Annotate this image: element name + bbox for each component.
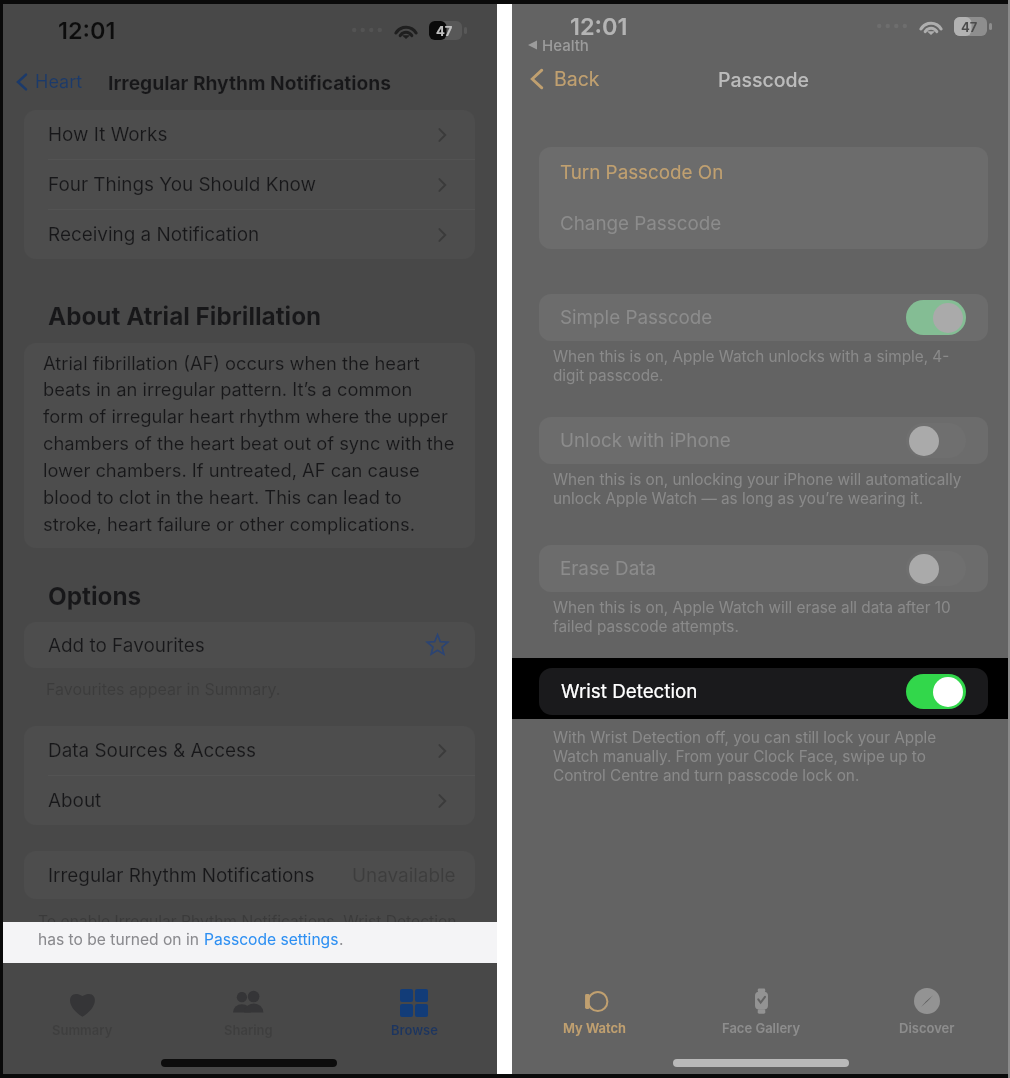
staticText: 12:01 <box>570 12 628 40</box>
button[interactable]: Health <box>524 32 593 58</box>
staticText: When this is on, unlocking your iPhone w… <box>553 470 962 508</box>
staticText: About <box>48 789 102 812</box>
button[interactable]: Simple Passcode <box>539 294 988 341</box>
button[interactable]: Receiving a Notification <box>24 210 475 259</box>
staticText: . <box>339 930 344 949</box>
staticText: Discover <box>899 1020 955 1036</box>
other: Open <box>434 227 450 243</box>
button[interactable]: Discover <box>844 982 1010 1052</box>
button[interactable]: On <box>906 300 966 335</box>
button[interactable]: Off <box>906 551 966 586</box>
staticText: 47 <box>436 23 453 39</box>
other: Add to Favourites <box>426 634 449 657</box>
other: Open <box>434 127 450 143</box>
button[interactable]: Off <box>906 423 966 458</box>
button[interactable]: Passcode settings <box>204 930 339 949</box>
staticText: Data Sources & Access <box>48 739 256 762</box>
staticText: Health <box>542 36 589 54</box>
button[interactable]: Erase Data <box>539 545 988 592</box>
staticText: Options <box>48 581 142 610</box>
button[interactable]: Data Sources & Access <box>24 726 475 775</box>
staticText: Turn Passcode On <box>560 161 724 184</box>
staticText: When this is on, Apple Watch unlocks wit… <box>553 347 950 385</box>
button[interactable]: Turn Passcode On <box>539 147 988 198</box>
staticText: About Atrial Fibrillation <box>48 301 322 330</box>
button[interactable]: About <box>24 776 475 825</box>
other: Summary <box>67 988 98 1019</box>
staticText: When this is on, Apple Watch will erase … <box>553 598 951 636</box>
other: Browse <box>400 989 428 1017</box>
button[interactable]: Summary <box>0 984 165 1054</box>
staticText: Erase Data <box>560 557 657 580</box>
other: Open <box>434 793 450 809</box>
staticText: To enable Irregular Rhythm Notifications… <box>38 912 457 931</box>
button[interactable]: Four Things You Should Know <box>24 160 475 209</box>
staticText: Face Gallery <box>722 1020 801 1036</box>
staticText: has to be turned on in <box>38 930 204 949</box>
button[interactable]: On <box>906 674 966 709</box>
other: Discover <box>914 988 940 1014</box>
other: Open <box>434 177 450 193</box>
other: Open <box>434 743 450 759</box>
staticText: With Wrist Detection off, you can still … <box>553 728 937 785</box>
button[interactable]: Irregular Rhythm Notifications <box>24 851 475 899</box>
button[interactable]: Back <box>9 67 86 97</box>
button[interactable]: Unlock with iPhone <box>539 417 988 464</box>
staticText: How It Works <box>48 123 168 146</box>
other: Back <box>525 67 549 91</box>
button[interactable]: Browse <box>331 984 497 1054</box>
staticText: Favourites appear in Summary. <box>46 679 281 698</box>
button[interactable]: My Watch <box>512 982 678 1052</box>
other: Face Gallery <box>748 988 775 1015</box>
other: Back <box>12 72 32 92</box>
button[interactable]: Back <box>522 62 603 96</box>
staticText: Four Things You Should Know <box>48 173 317 196</box>
other: Sharing <box>232 987 265 1020</box>
staticText: 12:01 <box>58 16 116 44</box>
staticText: My Watch <box>563 1020 627 1036</box>
staticText: Change Passcode <box>560 212 722 235</box>
button[interactable]: How It Works <box>24 110 475 159</box>
button[interactable]: Change Passcode <box>539 198 988 249</box>
staticText: Unavailable <box>352 864 456 887</box>
staticText: Back <box>554 67 600 91</box>
staticText: Receiving a Notification <box>48 223 260 246</box>
staticText: Heart <box>35 71 83 93</box>
staticText: Passcode <box>718 68 810 92</box>
staticText: Unlock with iPhone <box>560 429 731 452</box>
button[interactable]: Sharing <box>165 984 331 1054</box>
staticText: Sharing <box>224 1022 273 1038</box>
staticText: 47 <box>961 19 978 35</box>
other: Wi-Fi <box>394 21 418 39</box>
staticText: Summary <box>52 1022 113 1038</box>
staticText: Irregular Rhythm Notifications <box>108 71 391 94</box>
staticText: Browse <box>391 1022 438 1038</box>
other: Wi-Fi <box>919 17 943 35</box>
button[interactable]: Add to Favourites <box>24 622 475 668</box>
other: My Watch <box>581 987 610 1016</box>
button[interactable]: Face Gallery <box>678 982 844 1052</box>
staticText: Atrial fibrillation (AF) occurs when the… <box>43 352 456 536</box>
staticText: Wrist Detection <box>561 680 698 703</box>
button[interactable]: Wrist Detection <box>539 668 988 715</box>
staticText: Simple Passcode <box>560 306 713 329</box>
staticText: Add to Favourites <box>48 634 205 657</box>
staticText: Irregular Rhythm Notifications <box>48 864 315 887</box>
